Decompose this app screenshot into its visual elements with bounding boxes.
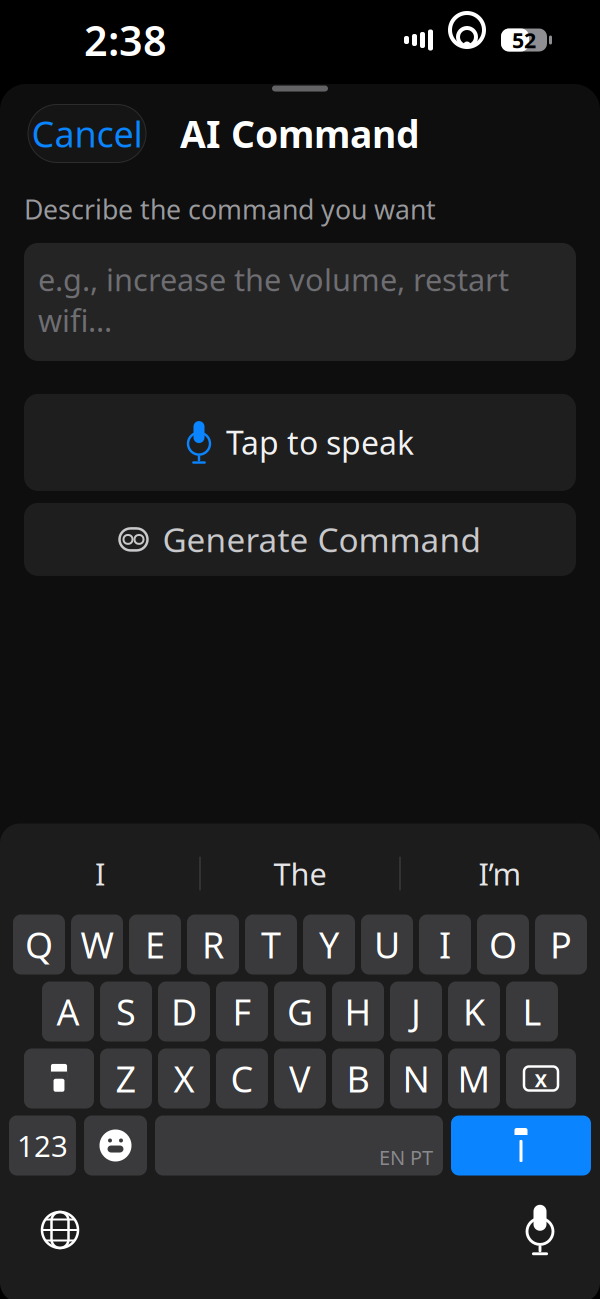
button[interactable]: V — [274, 1048, 326, 1108]
button[interactable]: 123 — [9, 1115, 76, 1175]
button[interactable]: S — [100, 981, 152, 1041]
staticText: I — [439, 921, 451, 968]
button[interactable]: J — [390, 981, 442, 1041]
button[interactable]: C — [216, 1048, 268, 1108]
staticText: The — [273, 853, 326, 894]
staticText: V — [289, 1055, 311, 1102]
staticText: x — [534, 1063, 547, 1093]
staticText: I’m — [478, 853, 521, 894]
button[interactable]: R — [187, 914, 239, 974]
button[interactable]: I’m — [400, 841, 599, 905]
button[interactable]: E — [129, 914, 181, 974]
staticText: I — [95, 853, 105, 894]
button[interactable]: X — [158, 1048, 210, 1108]
staticText: e.g., increase the volume, restart wifi.… — [38, 259, 509, 340]
button[interactable]: Cancel — [28, 104, 146, 162]
button[interactable]: O — [477, 914, 529, 974]
staticText: N — [402, 1055, 429, 1102]
staticText: S — [116, 988, 136, 1035]
staticText: D — [171, 988, 197, 1035]
staticText: W — [80, 921, 113, 968]
staticText: G — [287, 988, 313, 1035]
staticText: Describe the command you want — [24, 191, 436, 227]
button[interactable]: Dictation — [508, 1198, 572, 1262]
staticText: Q — [25, 921, 53, 968]
staticText: Generate Command — [162, 517, 481, 562]
staticText: P — [550, 921, 572, 968]
staticText: K — [463, 988, 485, 1035]
staticText: EN PT — [379, 1144, 433, 1170]
staticText: U — [374, 921, 400, 968]
button[interactable]: Shift — [24, 1048, 94, 1108]
staticText: J — [411, 988, 421, 1035]
staticText: X — [173, 1055, 194, 1102]
button[interactable]: The — [200, 841, 399, 905]
staticText: 52 — [512, 26, 536, 54]
button[interactable]: K — [448, 981, 500, 1041]
button[interactable]: F — [216, 981, 268, 1041]
button[interactable]: Generate Command — [24, 503, 576, 576]
button[interactable]: T — [245, 914, 297, 974]
staticText: Tap to speak — [226, 421, 414, 464]
staticText: B — [346, 1055, 369, 1102]
button[interactable]: Q — [13, 914, 65, 974]
button[interactable]: P — [535, 914, 587, 974]
button[interactable]: Delete — [506, 1048, 576, 1108]
button[interactable]: W — [71, 914, 123, 974]
staticText: L — [522, 988, 541, 1035]
button[interactable]: H — [332, 981, 384, 1041]
staticText: A — [56, 988, 79, 1035]
button[interactable]: I — [419, 914, 471, 974]
button[interactable]: G — [274, 981, 326, 1041]
button[interactable]: B — [332, 1048, 384, 1108]
button[interactable]: A — [42, 981, 94, 1041]
staticText: 123 — [17, 1126, 68, 1165]
button[interactable]: L — [506, 981, 558, 1041]
button[interactable]: Return — [451, 1115, 591, 1175]
button[interactable]: I — [0, 841, 199, 905]
staticText: F — [232, 988, 251, 1035]
button[interactable]: Emoji — [84, 1115, 147, 1175]
button[interactable]: Space — [155, 1115, 443, 1175]
button[interactable]: Y — [303, 914, 355, 974]
button[interactable]: Z — [100, 1048, 152, 1108]
staticText: Y — [319, 921, 339, 968]
staticText: C — [230, 1055, 253, 1102]
staticText: H — [344, 988, 371, 1035]
staticText: T — [261, 921, 281, 968]
staticText: O — [489, 921, 517, 968]
staticText: R — [202, 921, 224, 968]
button[interactable]: Switch keyboard — [28, 1198, 92, 1262]
staticText: AI Command — [180, 109, 420, 158]
button[interactable]: D — [158, 981, 210, 1041]
button[interactable]: N — [390, 1048, 442, 1108]
button[interactable]: U — [361, 914, 413, 974]
button[interactable]: Tap to speak — [24, 394, 576, 491]
staticText: Z — [115, 1055, 136, 1102]
staticText: Cancel — [31, 110, 142, 157]
staticText: E — [145, 921, 165, 968]
staticText: M — [457, 1055, 490, 1102]
staticText: 2:38 — [84, 13, 167, 67]
button[interactable]: M — [448, 1048, 500, 1108]
